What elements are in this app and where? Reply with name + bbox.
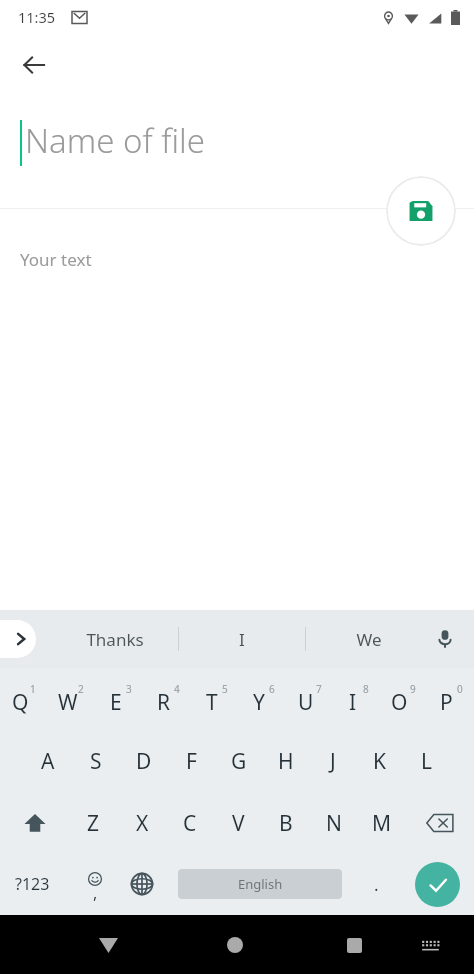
staticText: 7 [316, 682, 322, 696]
button[interactable]: Save [386, 176, 456, 246]
button[interactable]: Q [0, 670, 48, 728]
button[interactable]: O [380, 670, 427, 728]
button[interactable]: C [166, 794, 214, 852]
button[interactable]: J [309, 732, 356, 790]
button[interactable]: Keyboard [410, 925, 450, 965]
button[interactable]: We [306, 614, 432, 664]
button[interactable]: I [179, 614, 305, 664]
button[interactable]: G [215, 732, 262, 790]
button[interactable]: P [427, 670, 474, 728]
button[interactable]: W [48, 670, 96, 728]
staticText: D [136, 747, 152, 776]
staticText: H [278, 747, 294, 776]
staticText: T [206, 688, 218, 717]
button[interactable]: Recent apps [328, 919, 380, 971]
staticText: N [326, 809, 342, 838]
button[interactable]: E [96, 670, 144, 728]
button[interactable]: K [356, 732, 403, 790]
staticText: Y [253, 688, 265, 717]
staticText: ?123 [15, 873, 50, 895]
button[interactable]: Name of file [0, 96, 474, 209]
staticText: 5 [222, 682, 228, 696]
staticText: We [356, 628, 382, 651]
button[interactable]: F [168, 732, 215, 790]
staticText: I [239, 628, 245, 651]
button[interactable]: Home [209, 919, 261, 971]
staticText: 11:35 [18, 7, 56, 27]
staticText: 8 [363, 682, 369, 696]
staticText: M [372, 809, 392, 838]
staticText: S [90, 747, 102, 776]
button[interactable]: B [262, 794, 310, 852]
button[interactable]: More suggestions [0, 620, 36, 658]
staticText: O [391, 688, 408, 717]
button[interactable]: Y [239, 670, 286, 728]
button[interactable]: Your text [0, 209, 474, 589]
staticText: 1 [30, 682, 36, 696]
staticText: I [349, 688, 357, 717]
button[interactable]: D [120, 732, 168, 790]
button[interactable]: L [403, 732, 450, 790]
staticText: 3 [126, 682, 132, 696]
staticText: 4 [174, 682, 180, 696]
staticText: Thanks [86, 628, 144, 651]
button[interactable]: Z [69, 794, 118, 852]
staticText: A [41, 747, 55, 776]
staticText: Name of file [25, 118, 205, 163]
staticText: 9 [410, 682, 416, 696]
staticText: Q [12, 688, 29, 717]
button[interactable]: V [214, 794, 262, 852]
button[interactable]: U [286, 670, 333, 728]
staticText: V [232, 809, 245, 838]
staticText: . [374, 873, 379, 896]
staticText: K [373, 747, 386, 776]
button[interactable]: English [178, 869, 342, 899]
staticText: X [136, 809, 149, 838]
button[interactable]: Thanks [52, 614, 178, 664]
staticText: U [298, 688, 314, 717]
button[interactable]: N [310, 794, 358, 852]
button[interactable]: Change language [118, 860, 166, 908]
button[interactable]: Enter [415, 862, 460, 907]
button[interactable]: ?123 [4, 856, 60, 912]
staticText: English [238, 875, 283, 893]
staticText: B [279, 809, 293, 838]
button[interactable]: Emoji [70, 859, 120, 909]
staticText: 6 [269, 682, 275, 696]
staticText: J [330, 747, 336, 776]
staticText: P [440, 688, 453, 717]
button[interactable]: Shift [0, 794, 69, 852]
staticText: Z [87, 809, 100, 838]
staticText: 0 [457, 682, 463, 696]
button[interactable]: A [24, 732, 72, 790]
button[interactable]: Back [82, 919, 134, 971]
button[interactable]: M [358, 794, 406, 852]
staticText: R [157, 688, 171, 717]
button[interactable]: . [352, 860, 400, 908]
button[interactable]: Backspace [406, 794, 474, 852]
button[interactable]: R [144, 670, 192, 728]
button[interactable]: H [262, 732, 309, 790]
button[interactable]: T [192, 670, 239, 728]
button[interactable]: S [72, 732, 120, 790]
staticText: 2 [78, 682, 84, 696]
staticText: G [231, 747, 247, 776]
staticText: Your text [20, 248, 92, 271]
staticText: E [110, 688, 122, 717]
staticText: L [421, 747, 433, 776]
button[interactable]: Voice input [424, 618, 466, 660]
button[interactable]: I [333, 670, 380, 728]
button[interactable]: X [118, 794, 166, 852]
staticText: , [93, 882, 98, 904]
staticText: W [58, 688, 78, 717]
button[interactable]: Back [10, 41, 58, 89]
staticText: C [183, 809, 197, 838]
staticText: F [186, 747, 197, 776]
